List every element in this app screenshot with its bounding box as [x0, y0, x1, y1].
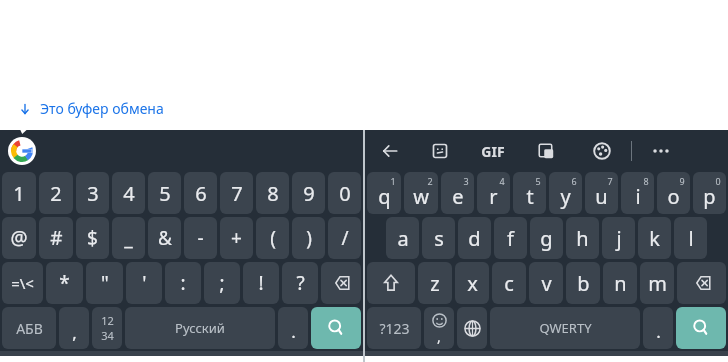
button[interactable]: Change language — [457, 307, 487, 349]
button[interactable]: $ — [76, 217, 109, 259]
button[interactable]: q — [367, 172, 401, 214]
button[interactable]: Backspace — [677, 262, 726, 304]
button[interactable]: Это буфер обмена — [6, 92, 176, 125]
button[interactable]: y — [549, 172, 582, 214]
staticText: 1 — [13, 180, 25, 207]
button[interactable]: h — [566, 217, 599, 259]
button[interactable]: , — [59, 307, 89, 349]
button[interactable]: l — [674, 217, 707, 259]
button[interactable]: & — [148, 217, 181, 259]
button[interactable]: + — [220, 217, 253, 259]
button[interactable]: o — [657, 172, 690, 214]
staticText: p — [703, 183, 716, 210]
button[interactable]: Translate — [531, 136, 561, 166]
button[interactable]: c — [492, 262, 526, 304]
staticText: 1 — [390, 175, 396, 187]
staticText: GIF — [481, 142, 505, 161]
button[interactable]: 2 — [39, 172, 73, 214]
button[interactable]: - — [184, 217, 217, 259]
staticText: r — [489, 183, 498, 210]
button[interactable]: _ — [112, 217, 145, 259]
button[interactable]: e — [441, 172, 474, 214]
button[interactable]: # — [39, 217, 73, 259]
button[interactable]: . — [278, 307, 308, 349]
button[interactable]: Stickers — [425, 136, 455, 166]
button[interactable]: ( — [256, 217, 289, 259]
staticText: 6 — [571, 175, 577, 187]
button[interactable]: Emoji and comma — [424, 307, 454, 349]
button[interactable]: : — [165, 262, 201, 304]
button[interactable]: g — [530, 217, 563, 259]
button[interactable]: k — [638, 217, 671, 259]
button[interactable]: 12 — [92, 307, 122, 349]
button[interactable]: ' — [126, 262, 162, 304]
button[interactable]: / — [328, 217, 361, 259]
button[interactable]: f — [494, 217, 527, 259]
staticText: 4 — [123, 180, 135, 207]
staticText: w — [413, 183, 429, 210]
staticText: . — [291, 320, 296, 343]
button[interactable]: ! — [243, 262, 279, 304]
button[interactable]: r — [477, 172, 510, 214]
button[interactable]: m — [640, 262, 674, 304]
button[interactable]: n — [603, 262, 637, 304]
button[interactable]: b — [566, 262, 600, 304]
button[interactable]: Русский — [125, 307, 275, 349]
button[interactable]: w — [404, 172, 438, 214]
button[interactable]: " — [86, 262, 123, 304]
button[interactable]: d — [458, 217, 491, 259]
staticText: 8 — [267, 180, 279, 207]
button[interactable]: u — [585, 172, 618, 214]
button[interactable]: i — [621, 172, 654, 214]
button[interactable]: ; — [204, 262, 240, 304]
button[interactable]: Backspace — [321, 262, 361, 304]
staticText: ) — [306, 225, 312, 251]
button[interactable]: * — [46, 262, 83, 304]
button[interactable]: 5 — [148, 172, 181, 214]
button[interactable]: GIF — [481, 136, 505, 166]
staticText: АБВ — [16, 319, 43, 338]
button[interactable]: 4 — [112, 172, 145, 214]
staticText: " — [101, 270, 109, 296]
button[interactable]: z — [418, 262, 452, 304]
button[interactable]: Back — [375, 136, 405, 166]
button[interactable]: =\< — [2, 262, 43, 304]
staticText: m — [648, 270, 667, 297]
staticText: h — [576, 225, 589, 252]
button[interactable]: . — [643, 307, 673, 349]
staticText: ( — [270, 225, 276, 251]
button[interactable]: t — [513, 172, 546, 214]
button[interactable]: Google — [8, 137, 36, 165]
button[interactable]: QWERTY — [490, 307, 640, 349]
staticText: . — [656, 320, 661, 343]
staticText: 2 — [427, 175, 433, 187]
button[interactable]: @ — [2, 217, 36, 259]
button[interactable]: 1 — [2, 172, 36, 214]
button[interactable]: Search — [676, 307, 726, 349]
button[interactable]: s — [422, 217, 455, 259]
button[interactable]: 7 — [220, 172, 253, 214]
button[interactable]: Theme — [587, 136, 617, 166]
button[interactable]: 0 — [328, 172, 361, 214]
button[interactable]: v — [529, 262, 563, 304]
button[interactable]: 8 — [256, 172, 289, 214]
button[interactable]: p — [693, 172, 726, 214]
button[interactable]: ) — [292, 217, 325, 259]
button[interactable]: j — [602, 217, 635, 259]
button[interactable]: 3 — [76, 172, 109, 214]
staticText: y — [560, 183, 571, 210]
staticText: l — [688, 225, 694, 252]
button[interactable]: 6 — [184, 172, 217, 214]
button[interactable]: ?123 — [367, 307, 421, 349]
button[interactable]: 9 — [292, 172, 325, 214]
button[interactable]: АБВ — [2, 307, 56, 349]
staticText: i — [635, 183, 641, 210]
button[interactable]: Search — [311, 307, 361, 349]
button[interactable]: a — [386, 217, 419, 259]
staticText: _ — [124, 225, 133, 251]
button[interactable]: More options — [646, 136, 676, 166]
button[interactable]: Shift — [367, 262, 415, 304]
button[interactable]: x — [455, 262, 489, 304]
staticText: j — [616, 225, 622, 252]
button[interactable]: ? — [282, 262, 318, 304]
